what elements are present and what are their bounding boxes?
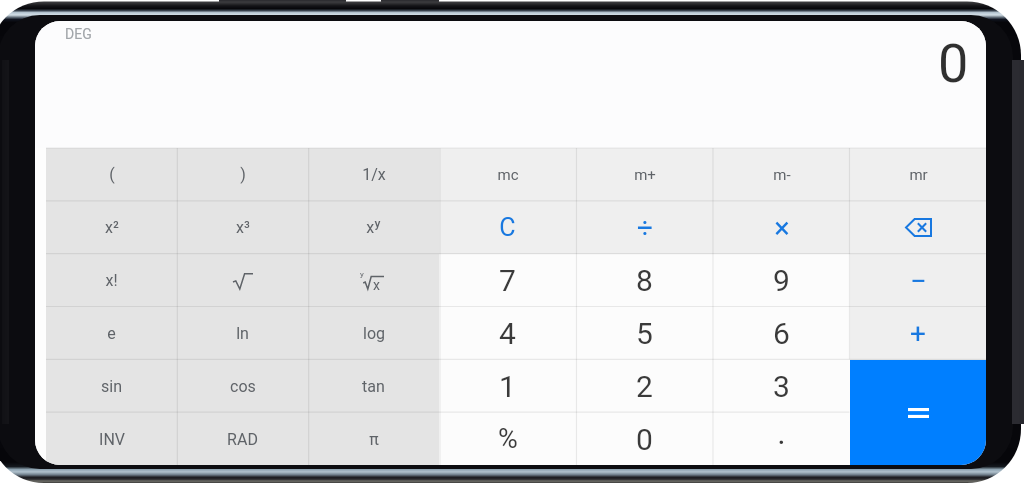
- button[interactable]: (: [46, 148, 177, 201]
- staticText: x!: [105, 271, 118, 290]
- button[interactable]: mc: [439, 148, 576, 201]
- button[interactable]: log: [308, 307, 439, 360]
- button[interactable]: ln: [177, 307, 308, 360]
- staticText: e: [107, 324, 116, 343]
- staticText: 6: [773, 316, 790, 351]
- button[interactable]: Nth root of x: [308, 254, 439, 307]
- staticText: x: [373, 277, 380, 293]
- staticText: INV: [99, 430, 125, 449]
- button[interactable]: RAD: [177, 413, 308, 465]
- staticText: +: [910, 317, 926, 350]
- staticText: 1/x: [362, 165, 386, 184]
- staticText: m+: [634, 166, 656, 184]
- button[interactable]: m-: [713, 148, 850, 201]
- button[interactable]: x³: [177, 201, 308, 254]
- staticText: 1: [499, 369, 516, 404]
- staticText: −: [910, 264, 927, 298]
- button[interactable]: e: [46, 307, 177, 360]
- staticText: 7: [499, 263, 516, 298]
- button[interactable]: −: [850, 254, 986, 307]
- button[interactable]: Backspace: [850, 201, 986, 254]
- button[interactable]: C: [439, 201, 576, 254]
- staticText: ÷: [637, 211, 653, 244]
- button[interactable]: 6: [713, 307, 850, 360]
- staticText: 4: [499, 316, 516, 351]
- staticText: 8: [636, 263, 653, 298]
- staticText: mc: [497, 166, 519, 184]
- staticText: (: [109, 165, 115, 184]
- button[interactable]: mr: [850, 148, 986, 201]
- staticText: x³: [236, 218, 250, 237]
- button[interactable]: ÷: [576, 201, 713, 254]
- staticText: 9: [773, 263, 790, 298]
- button[interactable]: 8: [576, 254, 713, 307]
- button[interactable]: 3: [713, 360, 850, 413]
- staticText: ln: [236, 324, 249, 343]
- button[interactable]: 1/x: [308, 148, 439, 201]
- staticText: xʸ: [366, 218, 381, 237]
- staticText: ): [240, 165, 246, 184]
- staticText: x²: [105, 218, 119, 237]
- button[interactable]: %: [439, 413, 576, 465]
- button[interactable]: x²: [46, 201, 177, 254]
- staticText: 0: [938, 32, 969, 95]
- button[interactable]: x!: [46, 254, 177, 307]
- staticText: mr: [909, 166, 928, 184]
- button[interactable]: 4: [439, 307, 576, 360]
- staticText: sin: [101, 377, 122, 396]
- staticText: %: [498, 423, 518, 455]
- button[interactable]: 1: [439, 360, 576, 413]
- button[interactable]: Equals: [850, 360, 986, 465]
- button[interactable]: ×: [713, 201, 850, 254]
- button[interactable]: π: [308, 413, 439, 465]
- staticText: DEG: [65, 26, 92, 42]
- button[interactable]: xʸ: [308, 201, 439, 254]
- staticText: tan: [362, 377, 385, 396]
- staticText: m-: [773, 166, 791, 184]
- button[interactable]: 7: [439, 254, 576, 307]
- staticText: 2: [636, 369, 653, 404]
- staticText: ×: [774, 211, 790, 245]
- button[interactable]: 2: [576, 360, 713, 413]
- button[interactable]: +: [850, 307, 986, 360]
- button[interactable]: ): [177, 148, 308, 201]
- button[interactable]: sin: [46, 360, 177, 413]
- staticText: log: [363, 324, 385, 343]
- staticText: π: [369, 430, 379, 449]
- staticText: 0: [636, 422, 653, 457]
- staticText: 5: [636, 316, 653, 351]
- staticText: y: [360, 270, 364, 279]
- staticText: cos: [230, 377, 256, 396]
- staticText: RAD: [227, 430, 258, 449]
- staticText: 3: [773, 369, 790, 404]
- button[interactable]: INV: [46, 413, 177, 465]
- button[interactable]: .: [713, 413, 850, 465]
- staticText: C: [499, 213, 516, 242]
- button[interactable]: Square root: [177, 254, 308, 307]
- staticText: .: [777, 414, 786, 452]
- button[interactable]: tan: [308, 360, 439, 413]
- button[interactable]: 5: [576, 307, 713, 360]
- button[interactable]: 0: [576, 413, 713, 465]
- button[interactable]: cos: [177, 360, 308, 413]
- button[interactable]: 9: [713, 254, 850, 307]
- button[interactable]: m+: [576, 148, 713, 201]
